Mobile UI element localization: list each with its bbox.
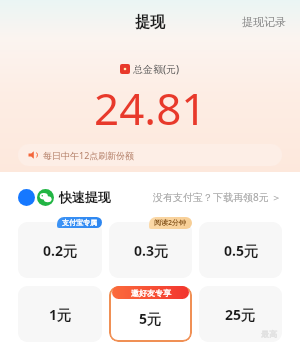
staticText: 总金额(元) [133, 62, 180, 76]
staticText: 最高 [261, 329, 277, 339]
staticText: 5元 [139, 309, 162, 328]
staticText: 0.2元 [43, 241, 77, 260]
staticText: 每日中午12点刷新份额 [43, 149, 135, 161]
staticText: 阅读2分钟 [154, 218, 187, 228]
button[interactable]: 0.2元 [18, 222, 102, 278]
staticText: 0.3元 [134, 241, 168, 260]
button[interactable]: 0.3元 [109, 222, 192, 278]
staticText: 0.5元 [224, 241, 258, 260]
staticText: 没有支付宝？下载再领8元 ＞ [153, 190, 282, 204]
staticText: 24.81 [94, 78, 207, 138]
staticText: 提现 [135, 13, 165, 32]
staticText: 支付宝专属 [62, 218, 97, 227]
staticText: 25元 [225, 305, 256, 324]
staticText: 提现记录 [242, 15, 286, 29]
button[interactable]: 25元 [199, 286, 282, 342]
button[interactable]: 没有支付宝？下载再领8元 ＞ [153, 186, 282, 208]
button[interactable]: 0.5元 [199, 222, 282, 278]
staticText: 邀好友专享 [131, 288, 171, 298]
button[interactable]: 每日中午12点刷新份额 [18, 144, 282, 166]
button[interactable]: 1元 [18, 286, 102, 342]
button[interactable]: 提现记录 [228, 7, 300, 37]
button[interactable]: 5元 [109, 286, 192, 342]
staticText: 快速提现 [59, 189, 111, 205]
staticText: 1元 [49, 305, 72, 324]
